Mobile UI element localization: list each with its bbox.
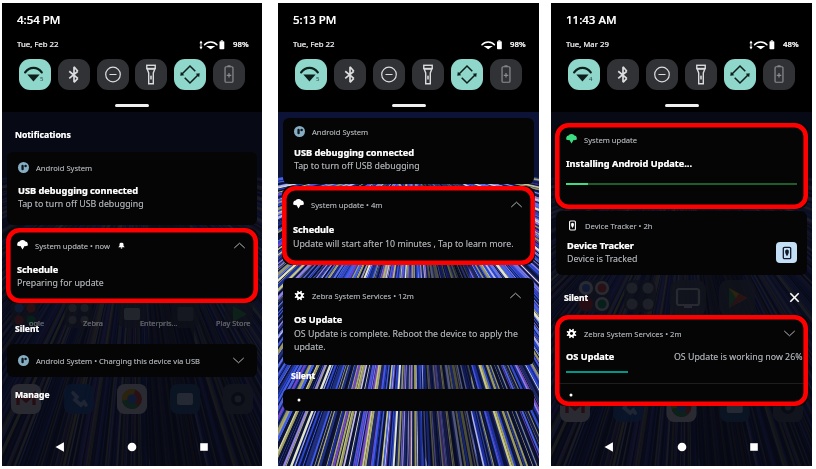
button[interactable]: Quick setting toggle <box>135 59 167 90</box>
button[interactable]: Quick setting toggle <box>412 59 444 90</box>
staticText: 11:43 AM <box>566 12 617 28</box>
button[interactable]: Android System <box>7 152 257 225</box>
staticText: Tue, Feb 22 <box>17 39 59 50</box>
button[interactable]: Quick setting toggle <box>724 59 756 90</box>
button[interactable]: Collapse notification <box>232 238 247 253</box>
button[interactable]: Quick setting toggle <box>19 59 51 90</box>
staticText: Schedule <box>293 223 335 236</box>
button[interactable]: Quick setting toggle <box>373 59 405 90</box>
button[interactable]: Collapse notification <box>509 197 524 212</box>
button[interactable]: Quick setting toggle <box>174 59 206 90</box>
staticText: Tap to turn off USB debugging <box>18 198 144 210</box>
staticText: Android System <box>36 163 93 173</box>
button[interactable]: Clear all notifications <box>787 290 802 305</box>
button[interactable]: Quick setting toggle <box>568 59 600 90</box>
staticText: Android System • Charging this device vi… <box>36 356 201 366</box>
staticText: 98% <box>233 39 249 50</box>
button[interactable] <box>283 389 534 411</box>
button[interactable]: Quick setting toggle <box>685 59 717 90</box>
staticText: 5 <box>316 75 320 83</box>
staticText: System update <box>584 135 638 145</box>
staticText: USB debugging connected <box>294 146 415 159</box>
staticText: 5 <box>40 75 44 83</box>
staticText: Tap to turn off USB debugging <box>294 160 420 172</box>
staticText: 5:13 PM <box>293 12 337 28</box>
button[interactable]: System update • 4m <box>282 186 535 265</box>
staticText: OS Update <box>566 350 615 363</box>
staticText: 4:54 PM <box>17 12 61 28</box>
button[interactable]: Zebra System Services • 2m <box>555 315 808 406</box>
staticText: Schedule <box>17 263 59 276</box>
staticText: Silent <box>564 292 589 304</box>
staticText: 4 <box>589 75 593 83</box>
button[interactable]: Quick setting toggle <box>97 59 129 90</box>
button[interactable]: Back <box>595 433 623 461</box>
staticText: Installing Android Update… <box>566 157 693 170</box>
staticText: Preparing for update <box>17 277 104 289</box>
button[interactable]: System update • now <box>6 228 258 303</box>
button[interactable]: Open device tracker <box>776 242 797 263</box>
staticText: Enterpris… <box>140 318 178 328</box>
staticText: OS Update is complete. Reboot the device… <box>294 328 521 352</box>
button[interactable]: Quick setting toggle <box>334 59 366 90</box>
staticText: Device Tracker <box>567 239 634 252</box>
button[interactable]: Expand notification <box>782 326 797 341</box>
button[interactable]: Back <box>46 433 74 461</box>
staticText: Silent <box>15 323 40 335</box>
button[interactable]: Recent apps <box>740 433 768 461</box>
button[interactable]: Home <box>118 433 146 461</box>
button[interactable]: Zebra System Services • 12m <box>283 278 534 365</box>
button[interactable]: Android System <box>283 118 534 184</box>
staticText: System update • 4m <box>311 200 383 210</box>
button[interactable]: Android System • Charging this device vi… <box>7 344 257 377</box>
staticText: Silent <box>291 370 316 382</box>
staticText: Device Tracker • 2h <box>585 221 653 231</box>
button[interactable]: Collapse notification <box>508 288 523 303</box>
staticText: Device is Tracked <box>567 253 638 265</box>
staticText: Update will start after 10 minutes , Tap… <box>293 238 514 250</box>
staticText: Tue, Feb 22 <box>293 39 335 50</box>
staticText: OS Update is working now 26% <box>674 351 803 363</box>
staticText: Android System <box>312 127 369 137</box>
button[interactable]: Recent apps <box>190 433 218 461</box>
button[interactable]: Expand notification <box>231 353 246 368</box>
staticText: 48% <box>783 39 799 50</box>
staticText: Notifications <box>15 129 71 141</box>
staticText: USB debugging connected <box>18 184 139 197</box>
staticText: OS Update <box>294 313 343 326</box>
button[interactable]: Quick setting toggle <box>490 59 522 90</box>
button[interactable]: System update <box>555 123 808 209</box>
button[interactable]: Quick setting toggle <box>646 59 678 90</box>
staticText: System update • now <box>35 241 111 251</box>
staticText: Zebra System Services • 2m <box>584 329 682 339</box>
staticText: Tue, Mar 29 <box>566 39 609 50</box>
staticText: Zebra <box>83 318 103 328</box>
staticText: ogle <box>29 318 45 328</box>
button[interactable]: Home <box>668 433 696 461</box>
staticText: Play Store <box>216 318 251 328</box>
button[interactable]: Manage <box>15 389 50 401</box>
button[interactable]: Quick setting toggle <box>607 59 639 90</box>
button[interactable]: Quick setting toggle <box>763 59 795 90</box>
button[interactable]: Quick setting toggle <box>213 59 245 90</box>
staticText: 98% <box>510 39 526 50</box>
button[interactable]: Device Tracker • 2h <box>556 211 807 275</box>
button[interactable]: Quick setting toggle <box>295 59 327 90</box>
staticText: Zebra System Services • 12m <box>312 291 414 301</box>
button[interactable]: Quick setting toggle <box>58 59 90 90</box>
button[interactable]: Quick setting toggle <box>451 59 483 90</box>
